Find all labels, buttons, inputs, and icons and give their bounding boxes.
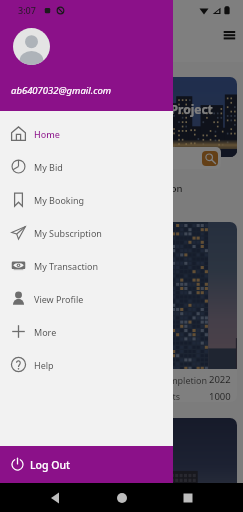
button[interactable]: Skyline Residences [6, 418, 237, 512]
staticText: My Transaction [34, 260, 99, 272]
staticText: ab6407032@gmail.com [11, 84, 112, 97]
button[interactable]: Open navigation drawer [220, 27, 239, 46]
button[interactable]: My Bid [0, 150, 173, 183]
staticText: Units [158, 390, 181, 402]
button[interactable]: Recent apps [176, 486, 200, 510]
staticText: 3:07 [18, 4, 36, 16]
button[interactable]: Log Out [0, 446, 173, 483]
staticText: View Profile [34, 293, 84, 305]
button[interactable]: Help [0, 348, 173, 381]
staticText: My Bid [34, 161, 63, 173]
button[interactable]: Search [202, 151, 218, 166]
button[interactable]: View Profile [0, 282, 173, 315]
staticText: Featured Projects Under Construction [11, 182, 183, 195]
button[interactable]: More [0, 315, 173, 348]
staticText: Home [34, 128, 60, 140]
button[interactable]: Home [0, 117, 173, 150]
button[interactable]: Home [110, 486, 134, 510]
staticText: Luxury Project [126, 101, 213, 117]
staticText: Completion [158, 374, 208, 386]
staticText: 2022 [209, 373, 231, 386]
staticText: More [34, 326, 57, 338]
staticText: My Booking [34, 194, 85, 206]
button[interactable]: Luxury Project [6, 77, 237, 157]
staticText: My Subscription [34, 227, 102, 239]
staticText: Help [34, 359, 54, 371]
button[interactable]: My Booking [0, 183, 173, 216]
staticText: Log Out [30, 458, 71, 472]
button[interactable]: Back [43, 486, 67, 510]
button[interactable]: My Transaction [0, 249, 173, 282]
button[interactable]: Skyline Residences [6, 222, 237, 402]
staticText: 1000 [209, 390, 231, 402]
button[interactable]: My Subscription [0, 216, 173, 249]
